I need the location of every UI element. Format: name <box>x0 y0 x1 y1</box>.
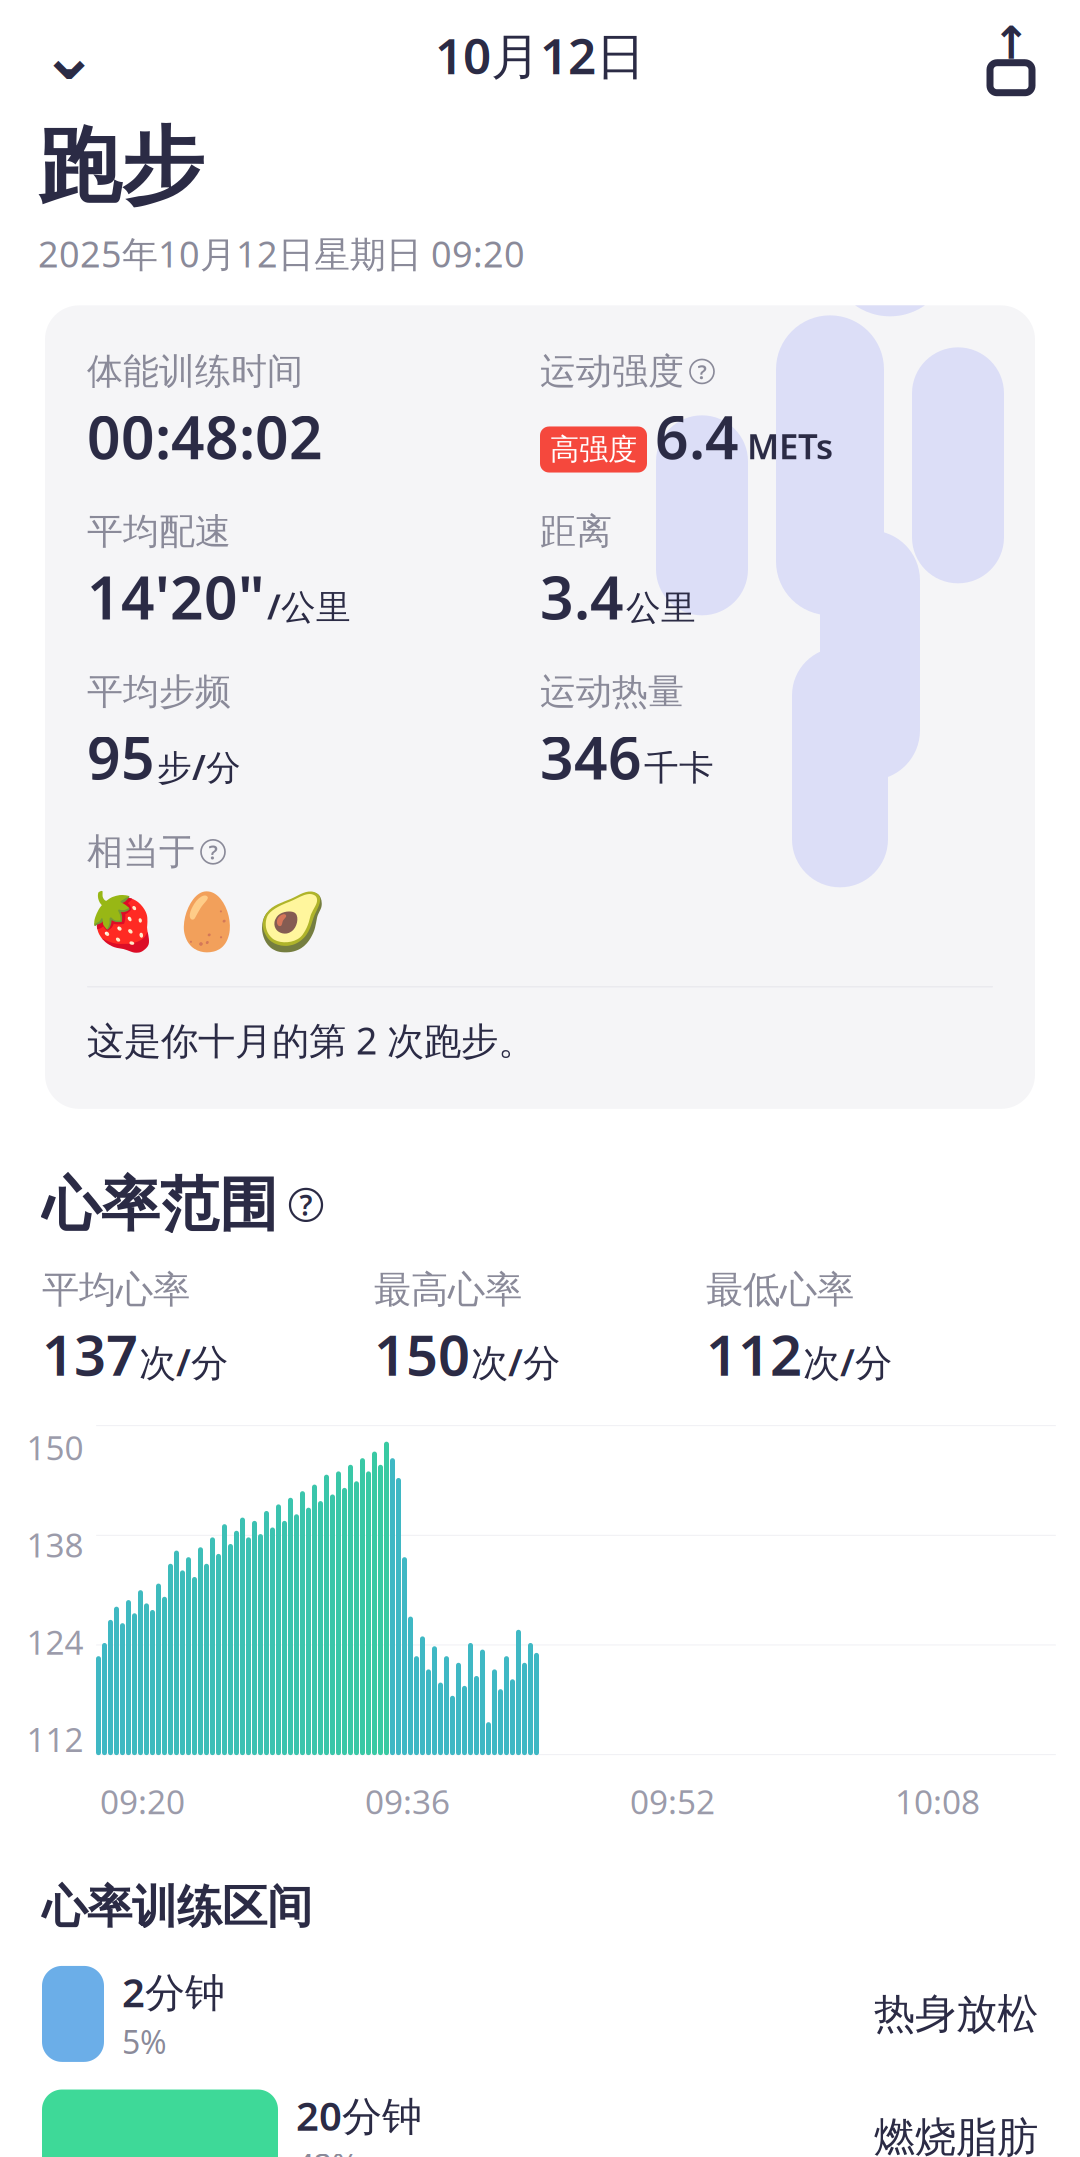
staticText: 运动热量 <box>540 670 684 714</box>
staticText: 112 <box>26 1717 83 1761</box>
staticText: 00:48:02 <box>87 398 323 475</box>
staticText: 2025年10月12日星期日 09:20 <box>38 229 525 277</box>
staticText: 42% <box>296 2144 359 2157</box>
staticText: 5% <box>122 2020 167 2063</box>
staticText: 09:20 <box>100 1779 185 1823</box>
staticText: 高强度 <box>550 431 637 467</box>
staticText: 次/分 <box>471 1337 560 1387</box>
staticText: ? <box>299 1186 312 1223</box>
staticText: 138 <box>26 1522 83 1567</box>
staticText: METs <box>747 423 833 469</box>
staticText: 心率训练区间 <box>42 1879 312 1935</box>
staticText: 距离 <box>540 509 612 554</box>
staticText: ⌄ <box>40 16 98 94</box>
button[interactable]: 收起 <box>32 18 106 92</box>
staticText: 2分钟 <box>122 1965 225 2018</box>
staticText: 燃烧脂肪 <box>874 2112 1038 2157</box>
staticText: /公里 <box>267 583 351 629</box>
staticText: 心率范围 <box>42 1169 278 1241</box>
staticText: ? <box>697 358 706 385</box>
button[interactable]: 分享 <box>974 18 1048 92</box>
staticText: 步/分 <box>157 743 241 789</box>
staticText: 346 <box>540 718 642 796</box>
staticText: 热身放松 <box>874 1988 1038 2039</box>
staticText: 平均配速 <box>87 509 231 554</box>
staticText: 09:52 <box>630 1779 715 1823</box>
staticText: 3.4 <box>540 558 624 636</box>
staticText: 10月12日 <box>435 22 645 88</box>
staticText: 150 <box>374 1317 470 1391</box>
staticText: 体能训练时间 <box>87 349 303 393</box>
staticText: 20分钟 <box>296 2089 422 2142</box>
staticText: 相当于 <box>87 830 195 874</box>
staticText: 137 <box>42 1317 138 1391</box>
staticText: 150 <box>26 1425 83 1469</box>
staticText: 112 <box>706 1317 802 1391</box>
staticText: 09:36 <box>365 1779 450 1823</box>
staticText: 最低心率 <box>706 1267 854 1313</box>
staticText: 6.4 <box>655 398 739 475</box>
staticText: 次/分 <box>139 1337 228 1387</box>
staticText: 🍓 🥚 🥑 <box>87 882 327 956</box>
staticText: 最高心率 <box>374 1267 522 1313</box>
staticText: 14'20" <box>87 558 265 636</box>
staticText: 95 <box>87 718 155 796</box>
staticText: 10:08 <box>895 1779 980 1823</box>
staticText: 跑步 <box>38 116 204 217</box>
staticText: 这是你十月的第 2 次跑步。 <box>87 1015 535 1065</box>
staticText: 平均步频 <box>87 670 231 714</box>
staticText: 平均心率 <box>42 1267 190 1313</box>
staticText: 124 <box>26 1620 83 1664</box>
staticText: ? <box>208 838 217 865</box>
staticText: 次/分 <box>803 1337 892 1387</box>
staticText: 公里 <box>626 587 696 629</box>
staticText: ↑ <box>992 17 1030 69</box>
staticText: 千卡 <box>644 747 714 789</box>
staticText: 运动强度 <box>540 349 684 393</box>
